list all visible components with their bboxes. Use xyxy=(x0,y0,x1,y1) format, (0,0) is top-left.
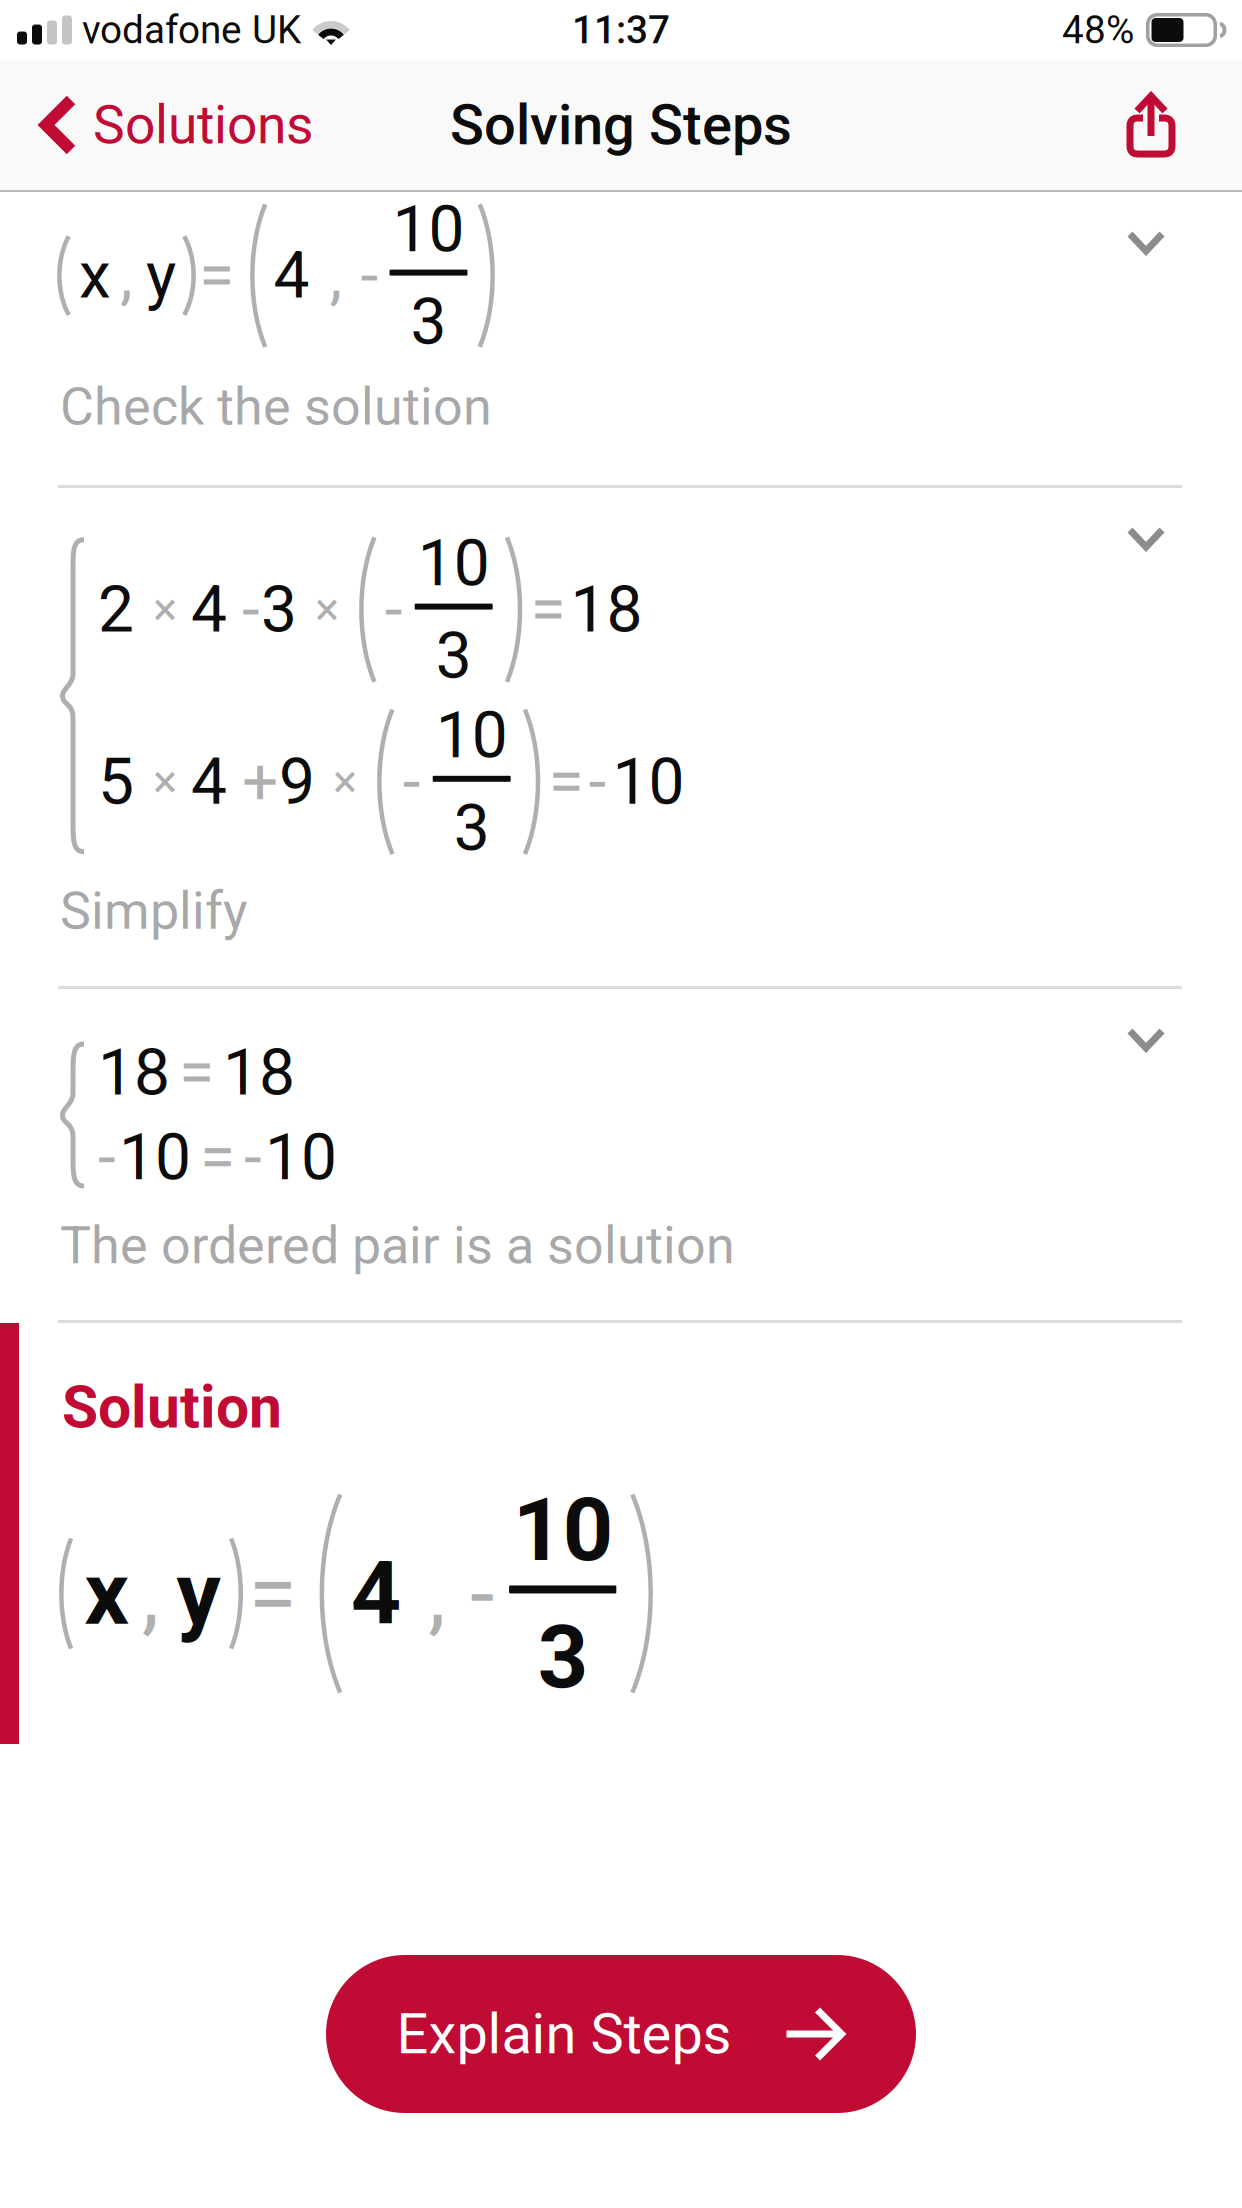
staticText: - xyxy=(98,1120,116,1195)
staticText: 11:37 xyxy=(572,7,670,53)
staticText: x xyxy=(84,1542,129,1645)
staticText: = xyxy=(248,1542,296,1645)
staticText: - xyxy=(588,744,606,819)
staticText: 10 xyxy=(119,1120,191,1195)
staticText: = xyxy=(530,572,565,647)
staticText: 3 xyxy=(261,572,297,647)
staticText: - xyxy=(244,1120,262,1195)
staticText: Explain Steps xyxy=(396,2001,731,2067)
staticText: 3 xyxy=(436,618,472,693)
button[interactable]: x xyxy=(0,192,1242,485)
staticText: 48% xyxy=(1062,7,1134,53)
staticText: 3 xyxy=(538,1606,588,1709)
staticText: 10 xyxy=(418,526,490,601)
staticText: Solutions xyxy=(93,94,314,156)
staticText: 5 xyxy=(98,744,134,819)
staticText: - xyxy=(242,572,260,647)
staticText: vodafone UK xyxy=(82,7,301,53)
button[interactable]: Share xyxy=(1096,60,1242,190)
button[interactable]: Solutions xyxy=(0,60,334,190)
staticText: Solving Steps xyxy=(450,92,792,158)
staticText: , xyxy=(428,1542,445,1645)
staticText: x xyxy=(79,238,111,313)
staticText: The ordered pair is a solution xyxy=(60,1215,735,1276)
staticText: 4 xyxy=(273,238,309,313)
staticText: - xyxy=(360,238,378,313)
staticText: , xyxy=(120,238,133,313)
staticText: 18 xyxy=(570,572,642,647)
staticText: 3 xyxy=(454,791,490,866)
staticText: 10 xyxy=(612,744,684,819)
staticText: + xyxy=(242,744,278,819)
staticText: - xyxy=(385,572,403,647)
staticText: 10 xyxy=(265,1120,337,1195)
staticText: - xyxy=(470,1542,494,1645)
button[interactable]: Explain Steps xyxy=(326,1955,916,2113)
staticText: y xyxy=(177,1542,221,1645)
staticText: Solution xyxy=(62,1373,282,1442)
staticText: × xyxy=(153,583,177,636)
staticText: 18 xyxy=(98,1035,170,1110)
staticText: 4 xyxy=(191,744,227,819)
staticText: , xyxy=(329,238,342,313)
staticText: = xyxy=(548,744,583,819)
staticText: Simplify xyxy=(60,880,248,941)
staticText: = xyxy=(200,1120,235,1195)
staticText: × xyxy=(315,583,339,636)
staticText: 4 xyxy=(351,1542,401,1645)
staticText: × xyxy=(333,755,357,808)
staticText: × xyxy=(153,755,177,808)
staticText: 10 xyxy=(436,698,508,773)
staticText: 18 xyxy=(223,1035,295,1110)
staticText: Check the solution xyxy=(60,376,492,437)
staticText: y xyxy=(146,238,176,313)
staticText: 9 xyxy=(279,744,315,819)
button[interactable]: 18 xyxy=(0,989,1242,1320)
staticText: = xyxy=(199,238,234,313)
staticText: 10 xyxy=(513,1478,613,1581)
staticText: , xyxy=(142,1542,159,1645)
staticText: = xyxy=(179,1035,214,1110)
staticText: 2 xyxy=(98,572,134,647)
staticText: 4 xyxy=(191,572,227,647)
staticText: - xyxy=(403,744,421,819)
staticText: 10 xyxy=(392,192,464,267)
staticText: 3 xyxy=(410,284,446,359)
button[interactable]: 2 xyxy=(0,488,1242,986)
